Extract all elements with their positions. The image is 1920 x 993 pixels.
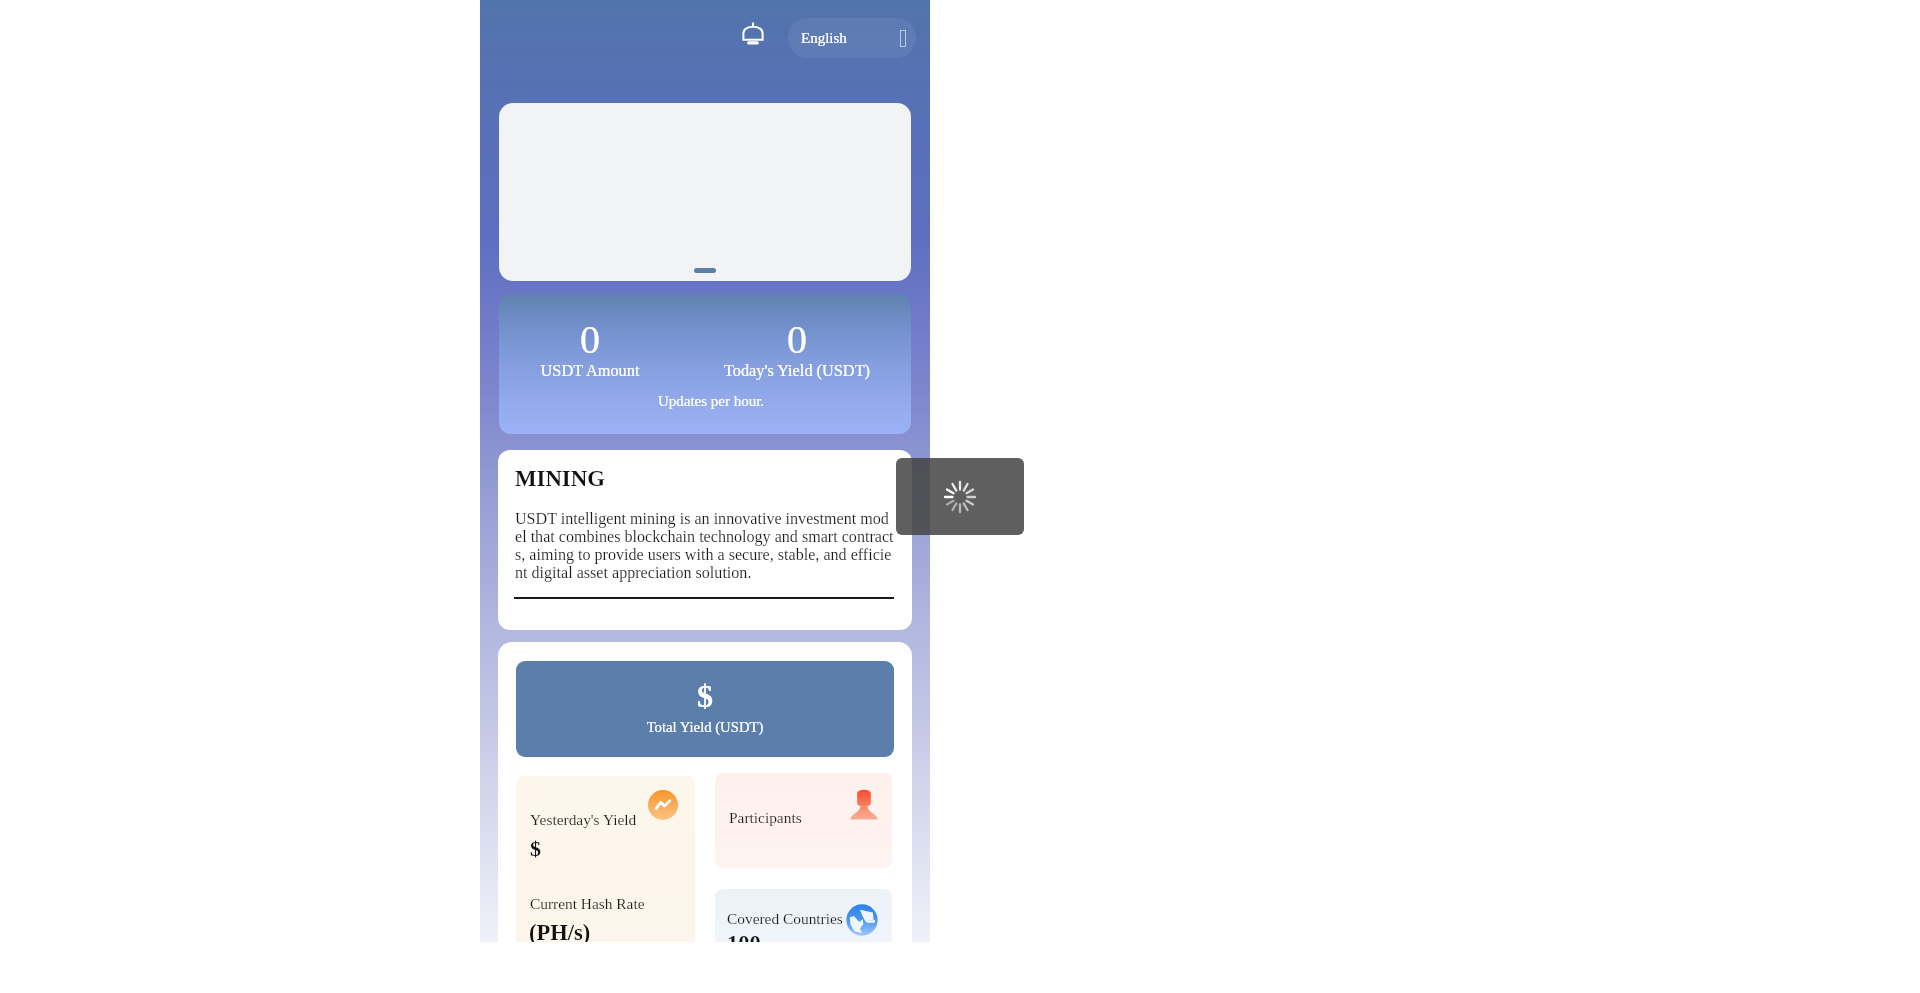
staticText: USDT intelligent mining is an innovative… [515,510,894,582]
staticText: MINING [515,466,605,491]
staticText: Yesterday's Yield [530,811,637,828]
staticText: $ [516,678,894,713]
button[interactable]: Notifications [733,14,773,54]
button[interactable]: Covered Countries [715,889,892,942]
staticText: 0 [499,317,690,361]
staticText: $ [530,836,541,860]
staticText: Covered Countries [727,910,843,927]
staticText: Total Yield (USDT) [516,719,894,735]
button[interactable] [499,103,911,281]
staticText: Current Hash Rate [530,895,645,912]
staticText: USDT Amount [499,361,690,379]
button[interactable]: Yesterday's Yield [516,776,695,942]
staticText: Updates per hour. [505,393,911,410]
button[interactable]: $ [516,661,894,757]
staticText: 0 [697,317,897,361]
button[interactable]: Select language [788,18,916,58]
staticText: English [801,30,847,47]
staticText: Today's Yield (USDT) [697,361,897,379]
button[interactable]: Participants [715,773,892,868]
staticText: 100 [727,931,761,942]
staticText: (PH/s) [529,920,591,942]
staticText: Participants [729,809,802,826]
